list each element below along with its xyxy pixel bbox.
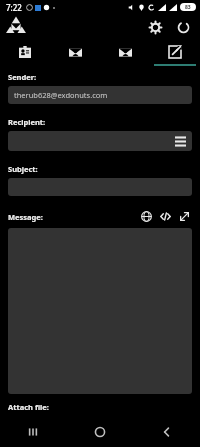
button[interactable]: Compose	[150, 40, 200, 64]
button[interactable]: Choose recipient	[173, 134, 187, 148]
button[interactable]: Recent apps	[0, 417, 66, 447]
button[interactable]: Home	[66, 417, 133, 447]
button[interactable]: Expand	[177, 209, 192, 224]
staticText: Subject:	[8, 164, 38, 174]
staticText: therub628@exdonuts.com	[14, 90, 108, 100]
staticText: 83	[185, 4, 191, 11]
staticText: Recipient:	[8, 117, 46, 127]
staticText: Sender:	[8, 72, 37, 82]
button[interactable]: App logo	[5, 16, 27, 38]
staticText: Message:	[8, 212, 43, 222]
button[interactable]: Back	[133, 417, 200, 447]
button[interactable]: Settings	[146, 18, 164, 36]
button[interactable]: Inbox	[50, 40, 100, 64]
button[interactable]: Choose recipient	[8, 131, 192, 151]
button[interactable]: therub628@exdonuts.com	[8, 86, 192, 104]
staticText: 7:22	[6, 2, 22, 13]
button[interactable]: Edit HTML	[158, 209, 173, 224]
button[interactable]: Sent	[100, 40, 150, 64]
staticText: Attach file:	[8, 402, 49, 412]
button[interactable]: Contacts	[0, 40, 50, 64]
button[interactable]: Insert link	[139, 209, 154, 224]
button[interactable]: Refresh	[174, 18, 192, 36]
